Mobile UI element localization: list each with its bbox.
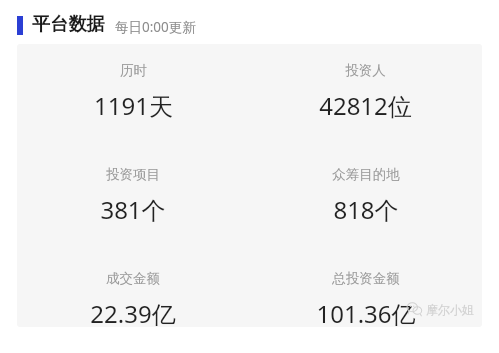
- other: WeChat watermark: [407, 302, 422, 317]
- button[interactable]: 成交金额: [17, 270, 249, 327]
- staticText: 历时: [120, 62, 147, 79]
- staticText: 投资人: [345, 62, 386, 79]
- staticText: 818个: [333, 193, 399, 226]
- button[interactable]: 投资项目: [17, 166, 249, 226]
- button[interactable]: 历时: [17, 62, 249, 122]
- button[interactable]: 平台数据: [17, 14, 499, 37]
- staticText: 摩尔小姐: [426, 302, 474, 317]
- staticText: 1191天: [94, 89, 173, 122]
- staticText: 42812位: [319, 89, 412, 122]
- staticText: 平台数据: [32, 13, 105, 36]
- staticText: 总投资金额: [332, 270, 400, 287]
- staticText: 投资项目: [106, 166, 160, 183]
- staticText: 381个: [100, 193, 166, 226]
- button[interactable]: 投资人: [249, 62, 482, 122]
- staticText: 22.39亿: [90, 297, 176, 327]
- button[interactable]: 总投资金额: [249, 270, 482, 327]
- button[interactable]: 众筹目的地: [249, 166, 482, 226]
- staticText: 众筹目的地: [332, 166, 400, 183]
- staticText: 每日0:00更新: [115, 18, 196, 36]
- staticText: 成交金额: [106, 270, 160, 287]
- staticText: 101.36亿: [316, 297, 416, 327]
